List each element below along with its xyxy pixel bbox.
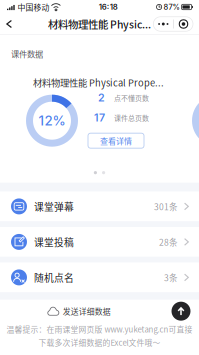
staticText: 课件数据	[11, 48, 43, 60]
staticText: 发送详细数据	[63, 305, 111, 317]
button[interactable]: 发送详细数据	[41, 300, 117, 322]
staticText: 16:18	[99, 2, 118, 12]
staticText: 3条	[164, 271, 178, 284]
staticText: 2	[98, 91, 105, 104]
button[interactable]: 随机点名	[0, 263, 199, 292]
staticText: 12%	[38, 113, 65, 129]
staticText: 87%	[164, 2, 180, 11]
button[interactable]: More	[153, 17, 173, 31]
button[interactable]: 课堂投稿	[0, 227, 199, 257]
staticText: 点不懂页数	[114, 93, 149, 103]
button[interactable]: Back	[0, 14, 22, 34]
staticText: 材料物理性能 Physic...	[48, 16, 151, 32]
staticText: 课堂投稿	[34, 235, 74, 249]
staticText: 28条	[159, 236, 178, 248]
staticText: 下载多次详细数据的Excel文件哦～	[38, 337, 160, 348]
button[interactable]: Close	[174, 17, 193, 31]
button[interactable]: 查看详情	[88, 133, 144, 148]
staticText: 中国移动	[17, 1, 49, 13]
staticText: 温馨提示：在雨课堂网页版 www.yuketang.cn可直接	[6, 323, 192, 335]
button[interactable]: Scroll to top	[169, 300, 192, 323]
staticText: 随机点名	[34, 270, 74, 284]
staticText: 17	[94, 111, 105, 124]
staticText: 查看详情	[100, 135, 132, 146]
button[interactable]: 课堂弹幕	[0, 192, 199, 221]
staticText: 课件总页数	[114, 113, 149, 123]
staticText: 301条	[154, 200, 178, 213]
staticText: 课堂弹幕	[34, 199, 74, 213]
staticText: 材料物理性能 Physical Prope...	[33, 76, 164, 89]
